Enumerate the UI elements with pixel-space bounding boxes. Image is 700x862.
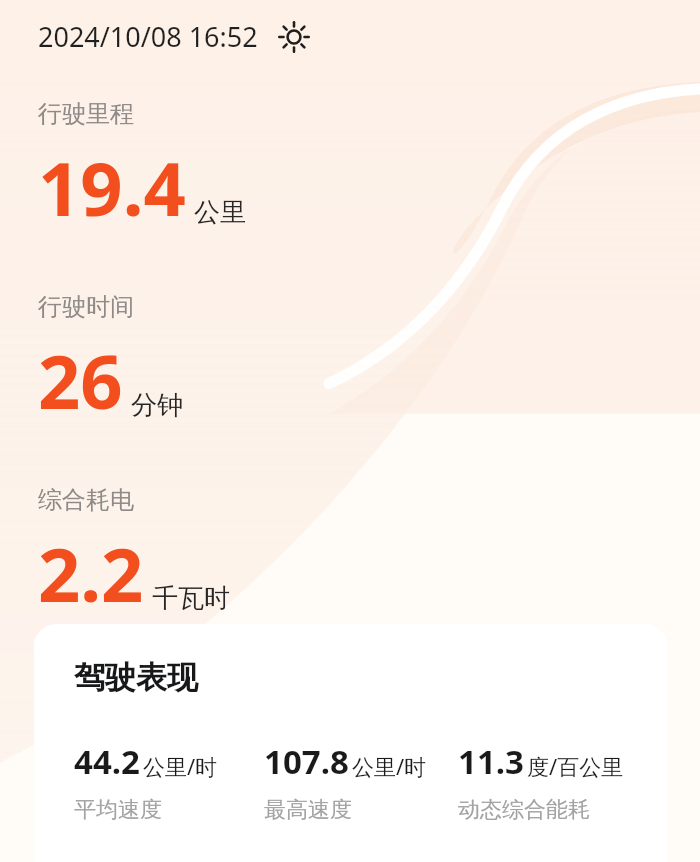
staticText: 驾驶表现 (74, 658, 198, 697)
staticText: 2024/10/08 16:52 (38, 18, 258, 55)
staticText: 综合耗电 (38, 485, 134, 515)
staticText: 公里 (194, 196, 246, 229)
staticText: 度/百公里 (527, 751, 624, 781)
staticText: 分钟 (131, 389, 183, 422)
staticText: 11.3 (458, 739, 524, 784)
staticText: 107.8 (264, 739, 349, 784)
staticText: 行驶里程 (38, 99, 134, 129)
staticText: 行驶时间 (38, 292, 134, 322)
staticText: 19.4 (38, 137, 186, 238)
staticText: 公里/时 (352, 751, 427, 781)
staticText: 平均速度 (74, 796, 162, 824)
staticText: 26 (38, 330, 123, 431)
button[interactable]: 驾驶表现 (34, 624, 667, 862)
staticText: 千瓦时 (152, 582, 230, 615)
staticText: 公里/时 (143, 751, 218, 781)
staticText: 2.2 (38, 523, 144, 624)
staticText: 最高速度 (264, 796, 352, 824)
staticText: 动态综合能耗 (458, 796, 590, 824)
button[interactable]: Weather, sunny (276, 19, 312, 55)
staticText: 44.2 (74, 739, 140, 784)
